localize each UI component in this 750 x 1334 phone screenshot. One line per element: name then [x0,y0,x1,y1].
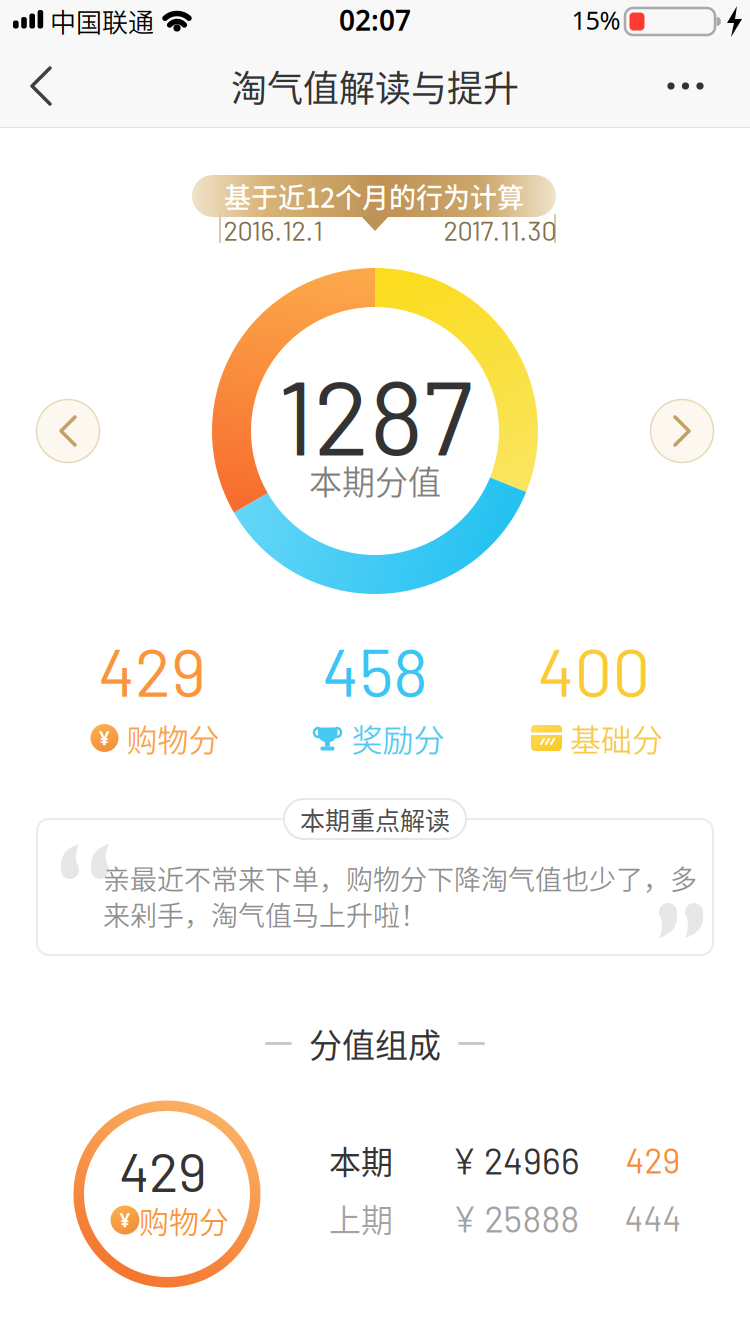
staticText: ¥ [119,1208,130,1232]
staticText: 奖励分 [351,716,444,760]
staticText: 15% [571,3,620,37]
button[interactable]: More [651,45,747,127]
staticText: 基础分 [570,716,663,760]
staticText: 2017.11.30 [443,214,556,246]
staticText: ¥ 25888 [452,1196,579,1240]
staticText: 400 [537,630,650,710]
staticText: 淘气值解读与提升 [231,60,519,112]
staticText: 本期 [329,1137,393,1183]
button[interactable]: Back [0,45,80,127]
staticText: 中国联通 [50,2,154,40]
staticText: 02:07 [339,1,411,39]
staticText: 429 [625,1140,680,1180]
staticText: 2016.12.1 [223,214,322,246]
staticText: 444 [624,1198,681,1238]
staticText: 亲最近不常来下单，购物分下降淘气值也少了，多 [103,858,697,898]
button[interactable]: Previous [35,398,101,464]
button[interactable]: Next [649,398,715,464]
staticText: ¥ [99,726,110,750]
staticText: 基于近12个月的行为计算 [224,176,524,216]
staticText: 购物分 [139,1198,229,1242]
staticText: ¥ 24966 [452,1138,580,1182]
staticText: 来剁手，淘气值马上升啦！ [103,894,427,934]
staticText: 购物分 [126,716,219,760]
staticText: 分值组成 [309,1019,441,1067]
staticText: 本期分值 [309,456,441,504]
staticText: 上期 [329,1195,393,1241]
staticText: 1287 [277,352,472,476]
staticText: 429 [119,1137,207,1203]
staticText: 458 [322,630,428,710]
staticText: 本期重点解读 [300,801,450,837]
staticText: 429 [98,630,206,710]
